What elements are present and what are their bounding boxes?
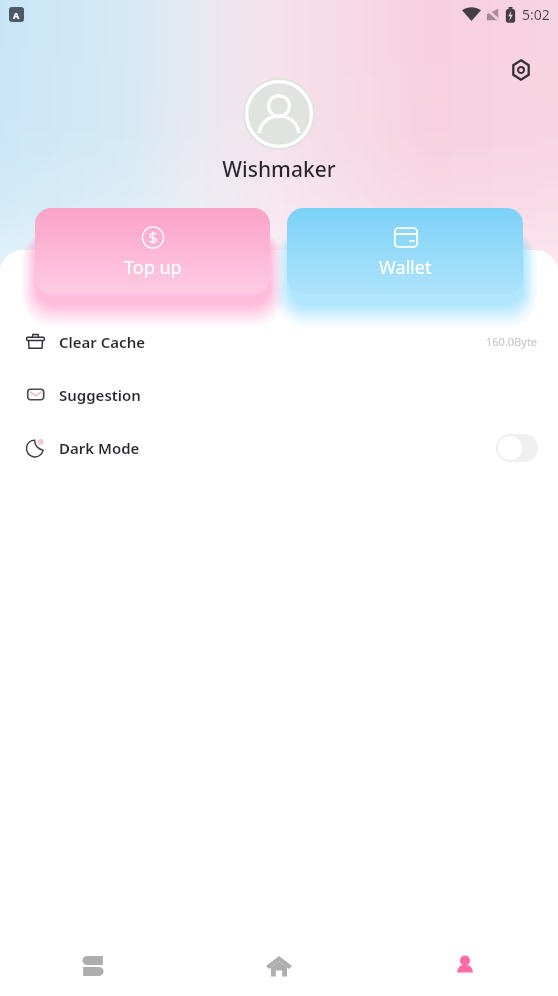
staticText: Dark Mode xyxy=(59,438,140,458)
button[interactable]: Settings xyxy=(507,56,535,84)
staticText: Top up xyxy=(124,255,182,280)
button[interactable]: Library xyxy=(0,936,186,996)
staticText: Clear Cache xyxy=(59,332,145,352)
staticText: Suggestion xyxy=(59,385,141,405)
button[interactable]: Dark Mode toggle xyxy=(496,434,538,462)
button[interactable]: Dark Mode xyxy=(0,421,558,474)
staticText: Wallet xyxy=(379,255,432,280)
button[interactable]: Clear Cache xyxy=(0,315,558,368)
staticText: Wishmaker xyxy=(0,155,558,184)
staticText: 160.0Byte xyxy=(486,334,538,349)
button[interactable]: Top up xyxy=(35,208,270,294)
staticText: A xyxy=(13,9,20,21)
button[interactable]: Wallet xyxy=(287,208,523,294)
button[interactable]: Profile xyxy=(372,936,558,996)
staticText: 5:02 xyxy=(522,5,550,24)
button[interactable]: Home xyxy=(186,936,372,996)
button[interactable]: Suggestion xyxy=(0,368,558,421)
